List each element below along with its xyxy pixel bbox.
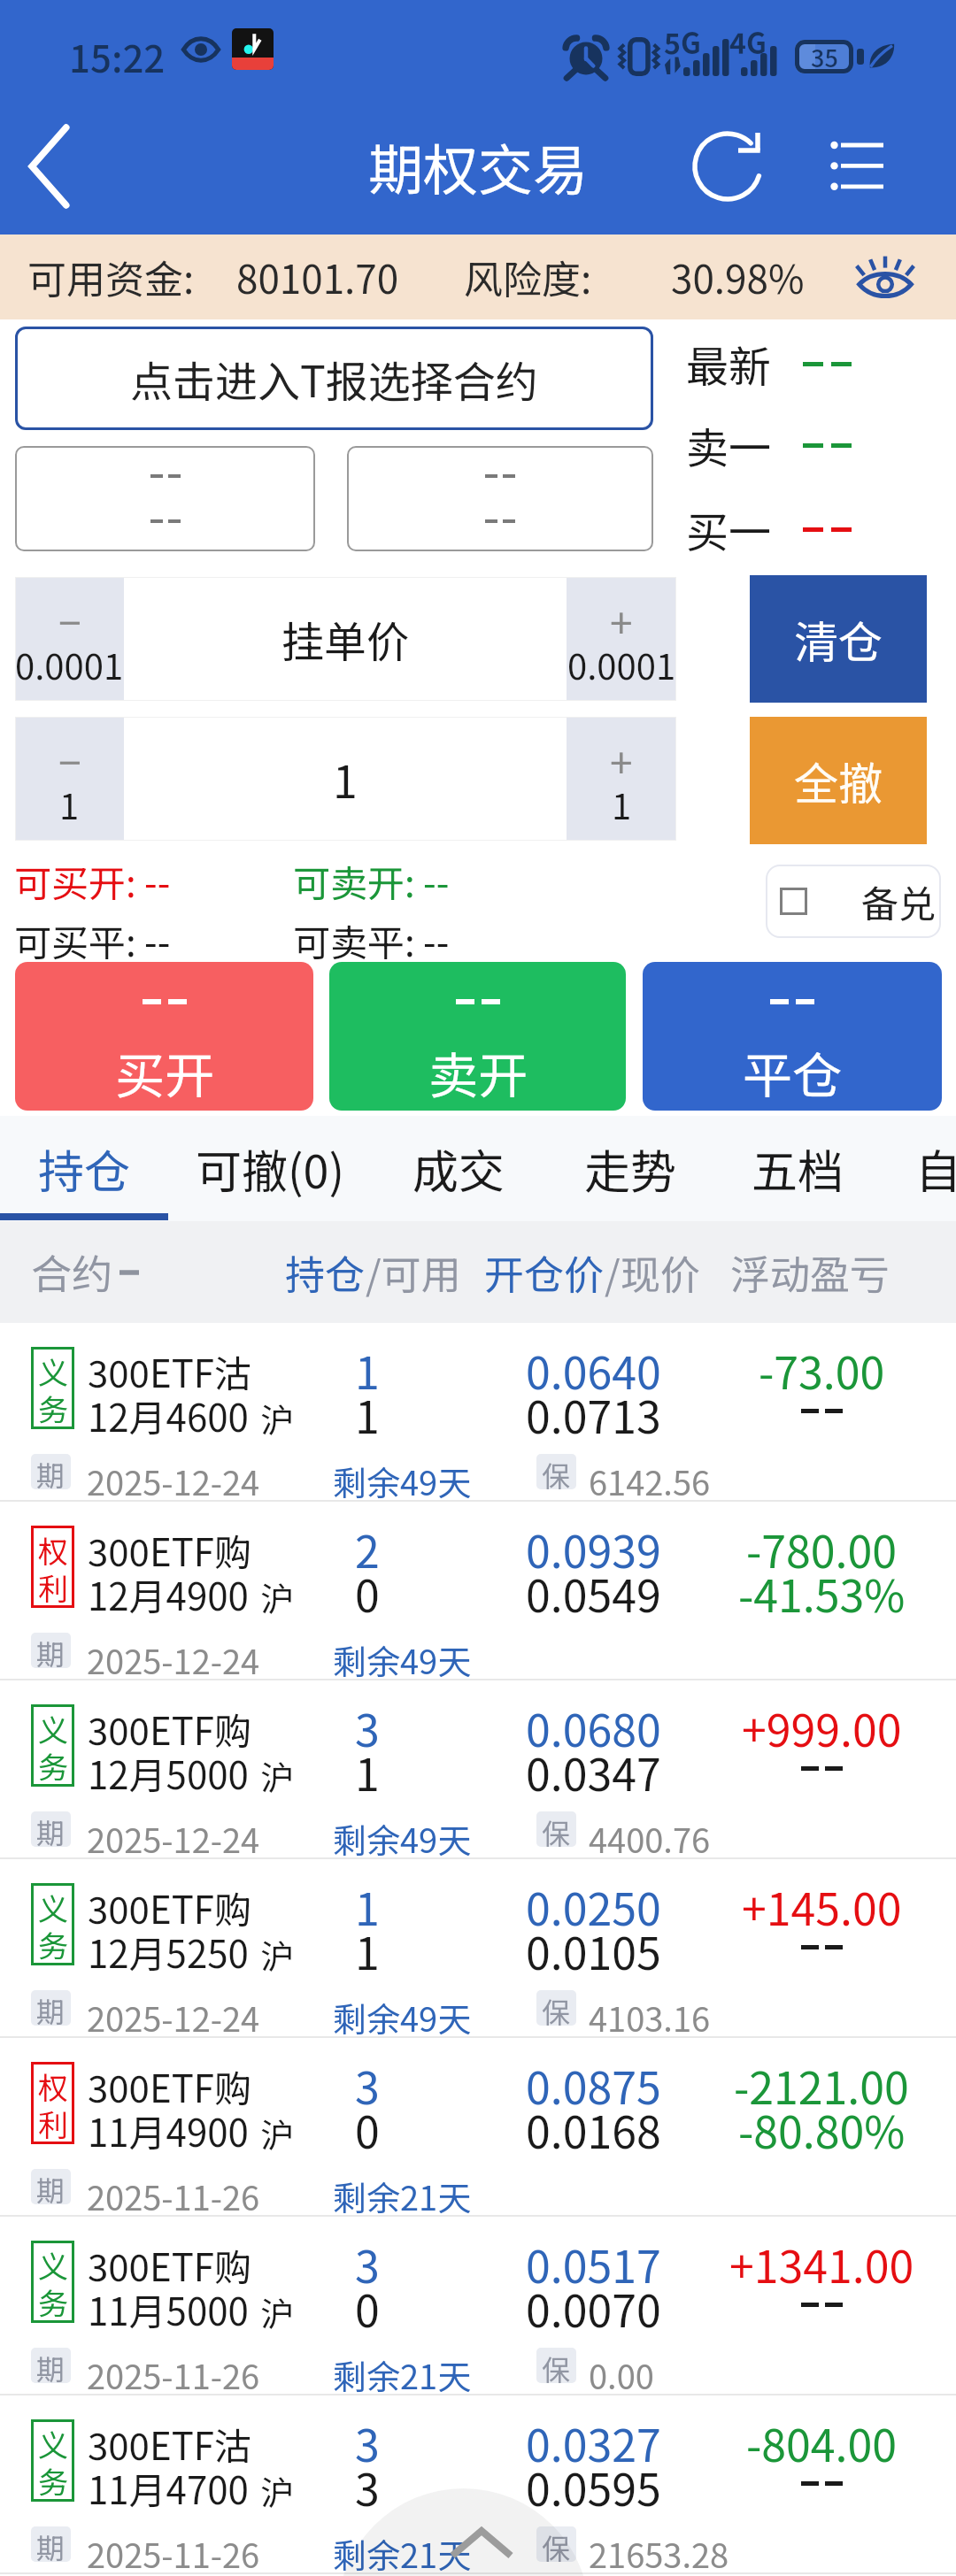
staticText: − (58, 591, 81, 650)
staticText: 0.0070 (526, 2276, 661, 2340)
staticText: 义 (38, 2243, 68, 2287)
staticText: 剩余49天 (333, 1993, 472, 2042)
button[interactable]: 清仓 (750, 575, 927, 703)
staticText: 300ETF购 (88, 2059, 252, 2113)
staticText: 沪 (260, 2466, 295, 2515)
staticText: 期 (36, 1454, 66, 1489)
staticText: 0.0595 (526, 2455, 661, 2518)
button[interactable]: 全撤 (750, 717, 927, 844)
button[interactable]: 自 (898, 1116, 956, 1221)
button[interactable]: 卖一 (686, 410, 929, 481)
staticText: 务 (38, 1923, 68, 1966)
staticText: 0 (355, 1561, 380, 1625)
staticText: 保 (542, 1454, 571, 1489)
staticText: 0.0713 (526, 1382, 661, 1446)
staticText: 300ETF购 (88, 2238, 252, 2292)
staticText: -2121.00 (734, 2053, 909, 2117)
staticText: 1 (355, 1919, 380, 1982)
staticText: 0.0680 (526, 1696, 661, 1759)
staticText: 务 (38, 1387, 68, 1430)
button[interactable]: 义 (0, 1859, 956, 2038)
staticText: 0.0549 (526, 1561, 661, 1625)
staticText: 2025-12-24 (87, 1635, 260, 1684)
staticText: 点击进入T报选择合约 (130, 348, 538, 410)
button[interactable]: 权 (0, 2038, 956, 2217)
button[interactable]: 义 (0, 1323, 956, 1502)
staticText: 0.0640 (526, 1338, 661, 1402)
button[interactable]: + (567, 577, 676, 701)
button[interactable]: 权 (0, 1502, 956, 1680)
button[interactable]: 点击进入T报选择合约 (15, 327, 653, 430)
staticText: 4103.16 (589, 1993, 711, 2042)
button[interactable]: 可撤(0) (177, 1116, 363, 1221)
staticText: /可用 (366, 1243, 461, 1301)
button[interactable]: Back (0, 97, 97, 235)
staticText: 可买开: -- (14, 854, 171, 908)
staticText: 35 (811, 40, 838, 73)
staticText: 剩余49天 (333, 1457, 472, 1505)
staticText: 11月4700 (88, 2461, 249, 2515)
staticText: 期 (36, 1990, 66, 2026)
staticText: 12月4900 (88, 1567, 249, 1621)
button[interactable]: Menu (807, 118, 905, 215)
staticText: 6142.56 (589, 1457, 711, 1505)
button[interactable]: 备兑 (766, 865, 941, 938)
staticText: 4400.76 (589, 1814, 711, 1863)
button[interactable]: 卖开 (329, 962, 626, 1111)
staticText: 2 (355, 1517, 380, 1580)
button[interactable]: Toggle visibility (841, 235, 929, 319)
button[interactable]: 最新 (686, 328, 929, 399)
staticText: 300ETF沽 (88, 2417, 252, 2471)
staticText: 沪 (260, 1751, 295, 1800)
staticText: 义 (38, 2422, 68, 2465)
button[interactable]: 成交 (374, 1116, 543, 1221)
staticText: 买一 (686, 498, 772, 560)
staticText: 2025-11-26 (87, 2529, 260, 2576)
button[interactable]: Refresh (683, 122, 772, 211)
staticText: 务 (38, 2280, 68, 2324)
staticText: 0.0517 (526, 2232, 661, 2295)
button[interactable] (347, 446, 653, 551)
staticText: 浮动盈亏 (730, 1243, 890, 1301)
staticText: 务 (38, 1744, 68, 1788)
button[interactable] (15, 446, 315, 551)
staticText: +145.00 (742, 1874, 902, 1938)
staticText: 1 (355, 1382, 380, 1446)
button[interactable]: 买开 (15, 962, 313, 1111)
staticText: − (58, 731, 81, 790)
staticText: 2025-12-24 (87, 1457, 260, 1505)
staticText: 0.0347 (526, 1740, 661, 1803)
button[interactable]: 走势 (546, 1116, 714, 1221)
button[interactable]: Scroll to top (337, 2488, 590, 2576)
staticText: 保 (542, 2526, 571, 2562)
button[interactable]: − (15, 577, 124, 701)
staticText: +999.00 (742, 1696, 902, 1759)
staticText: 期 (36, 1633, 66, 1668)
staticText: 300ETF沽 (88, 1344, 252, 1398)
staticText: 3 (355, 2455, 380, 2518)
button[interactable]: + (567, 717, 676, 841)
button[interactable]: 义 (0, 1680, 956, 1859)
staticText: 剩余21天 (333, 2529, 472, 2576)
staticText: 成交 (412, 1135, 505, 1202)
button[interactable]: 买一 (686, 494, 929, 565)
staticText: 剩余21天 (333, 2172, 472, 2220)
staticText: 期 (36, 2169, 66, 2204)
button[interactable]: 义 (0, 2217, 956, 2395)
staticText: 期 (36, 2348, 66, 2383)
staticText: 沪 (260, 2288, 295, 2336)
staticText: 3 (355, 2411, 380, 2474)
button[interactable]: 平仓 (643, 962, 942, 1111)
button[interactable]: 义 (0, 2395, 956, 2574)
staticText: + (610, 591, 633, 650)
staticText: 0.0168 (526, 2097, 661, 2161)
staticText: 权 (38, 2065, 68, 2108)
staticText: 80101.70 (236, 249, 399, 305)
button[interactable]: − (15, 717, 124, 841)
staticText: 0.0939 (526, 1517, 661, 1580)
staticText: 1 (355, 1740, 380, 1803)
button[interactable]: 五档 (713, 1116, 882, 1221)
staticText: 0.0001 (15, 639, 124, 690)
staticText: 12月4600 (88, 1388, 249, 1442)
button[interactable]: 持仓 (1, 1116, 167, 1221)
